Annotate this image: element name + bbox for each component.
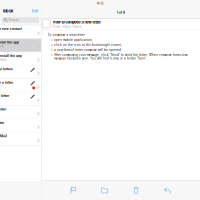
button[interactable]: Welcome to Mail bbox=[0, 133, 41, 146]
button[interactable]: How to add a new contact bbox=[0, 25, 41, 38]
button[interactable]: How to find your letters bbox=[0, 66, 41, 79]
staticText: 1 of 9 bbox=[117, 10, 125, 15]
button[interactable]: Delete bbox=[133, 187, 139, 194]
button[interactable]: How to install the app bbox=[0, 39, 41, 52]
staticText: a new form of letter compose will be ope… bbox=[54, 48, 122, 52]
button[interactable]: How to mark a letter bbox=[0, 119, 41, 132]
button[interactable]: Move to folder bbox=[101, 187, 108, 194]
button[interactable]: Edit bbox=[32, 8, 38, 14]
staticText: Welcome to Mail bbox=[0, 134, 7, 138]
staticText: How to install the app bbox=[0, 40, 19, 44]
staticText: From: Inbox Inbox bbox=[52, 25, 81, 28]
staticText: How to find your letters bbox=[0, 67, 13, 71]
staticText: open mobile application, bbox=[54, 38, 93, 42]
staticText: How to add a new contact bbox=[0, 27, 22, 31]
staticText: Edit bbox=[32, 9, 38, 13]
staticText: How to mark a letter bbox=[0, 121, 4, 125]
button[interactable]: Reply bbox=[164, 187, 171, 194]
staticText: How to reply to a letter bbox=[0, 94, 9, 98]
staticText: Inbox bbox=[3, 9, 13, 13]
button[interactable]: How to reply to a letter bbox=[0, 92, 41, 105]
button[interactable]: How to install the app bbox=[0, 52, 41, 65]
staticText: Inbox Inbox bbox=[0, 58, 7, 61]
staticText: How to compose a new letter bbox=[52, 20, 101, 24]
button[interactable]: How to delete a letter bbox=[0, 106, 41, 119]
staticText: How to install the app bbox=[0, 54, 22, 58]
staticText: How to delete a letter bbox=[0, 107, 6, 111]
staticText: Inbox Inbox bbox=[0, 44, 4, 48]
button[interactable]: Flag bbox=[71, 187, 76, 194]
staticText: To compose a new letter: bbox=[47, 33, 85, 37]
staticText: How to compose a letter bbox=[0, 81, 13, 84]
button[interactable]: How to compose a letter bbox=[0, 79, 41, 92]
staticText: Search bbox=[9, 18, 20, 22]
staticText: click on the icon at the bottom right co… bbox=[54, 43, 122, 47]
staticText: 14:13 bbox=[96, 2, 103, 5]
staticText: After composing your message, click "Sen… bbox=[54, 53, 188, 60]
